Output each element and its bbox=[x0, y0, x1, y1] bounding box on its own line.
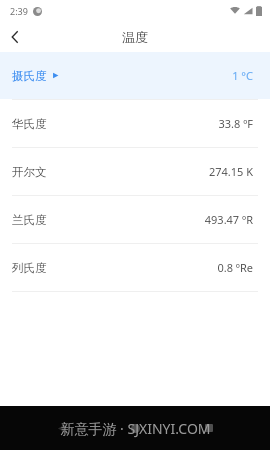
staticText: 温度 bbox=[122, 29, 148, 45]
button[interactable]: 兰氏度 bbox=[0, 196, 270, 243]
staticText: 1 °C bbox=[232, 68, 253, 83]
button[interactable]: Recent apps bbox=[196, 415, 222, 441]
button[interactable]: 列氏度 bbox=[0, 244, 270, 291]
staticText: 新意手游 · SJXINYI.COM bbox=[60, 419, 211, 438]
staticText: 274.15 K bbox=[208, 164, 253, 179]
button[interactable]: Back bbox=[0, 22, 30, 52]
button[interactable]: 华氏度 bbox=[0, 100, 270, 147]
button[interactable]: Back bbox=[48, 415, 74, 441]
button[interactable]: 摄氏度 bbox=[0, 52, 270, 99]
staticText: 华氏度 bbox=[12, 117, 47, 131]
staticText: 493.47 ºR bbox=[204, 212, 253, 227]
button[interactable]: Home bbox=[122, 415, 148, 441]
staticText: 2:39 bbox=[10, 5, 28, 17]
staticText: 0.8 ºRe bbox=[217, 260, 253, 275]
staticText: 开尔文 bbox=[12, 165, 47, 179]
staticText: 兰氏度 bbox=[12, 213, 47, 227]
staticText: 33.8 ºF bbox=[218, 116, 253, 131]
button[interactable]: 开尔文 bbox=[0, 148, 270, 195]
staticText: 摄氏度 bbox=[12, 69, 47, 83]
staticText: 列氏度 bbox=[12, 261, 47, 275]
